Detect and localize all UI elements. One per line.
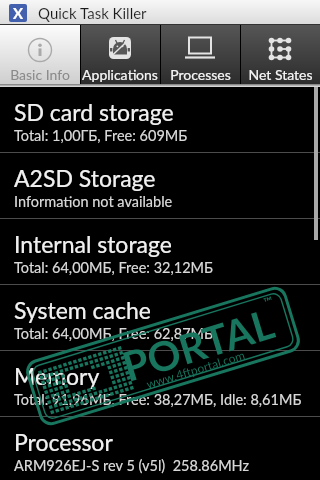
button[interactable]: Net States	[240, 25, 320, 87]
button[interactable]: Basic Info	[0, 25, 80, 87]
staticText: Processor	[14, 428, 113, 456]
button[interactable]: SD card storage	[0, 87, 320, 152]
staticText: X	[13, 4, 24, 22]
staticText: Information not available	[14, 193, 173, 210]
button[interactable]: Applications	[80, 25, 160, 87]
staticText: System cache	[14, 296, 151, 324]
staticText: Memory	[14, 362, 100, 390]
button[interactable]: System cache	[0, 285, 320, 350]
button[interactable]: A2SD Storage	[0, 153, 320, 218]
staticText: Total: 64,00МБ, Free: 62,87МБ	[14, 325, 214, 342]
button[interactable]: Processor	[0, 417, 320, 480]
staticText: Net States	[248, 66, 313, 83]
staticText: Applications	[82, 66, 158, 83]
staticText: Basic Info	[10, 66, 70, 83]
other: Applications	[107, 35, 133, 61]
other: Processes	[187, 35, 213, 61]
staticText: PORTAL	[116, 298, 280, 391]
button[interactable]: Memory	[0, 351, 320, 416]
staticText: Processes	[170, 66, 231, 83]
button[interactable]: Processes	[160, 25, 240, 87]
other: Basic Info	[27, 35, 53, 61]
staticText: Total: 1,00ГБ, Free: 609МБ	[14, 127, 188, 144]
other: Net States	[267, 35, 293, 61]
staticText: ARM926EJ-S rev 5 (v5l) 258.86MHz	[14, 457, 250, 474]
staticText: ™	[262, 293, 275, 309]
staticText: SD card storage	[14, 98, 174, 126]
staticText: Total: 91,96МБ, Free: 38,27МБ, Idle: 8,6…	[14, 391, 302, 408]
button[interactable]: Internal storage	[0, 219, 320, 284]
staticText: Quick Task Killer	[38, 4, 147, 22]
staticText: A2SD Storage	[14, 164, 156, 192]
staticText: Internal storage	[14, 230, 172, 258]
staticText: Total: 64,00МБ, Free: 32,12МБ	[14, 259, 214, 276]
staticText: www.4ftportal.com	[144, 347, 247, 391]
